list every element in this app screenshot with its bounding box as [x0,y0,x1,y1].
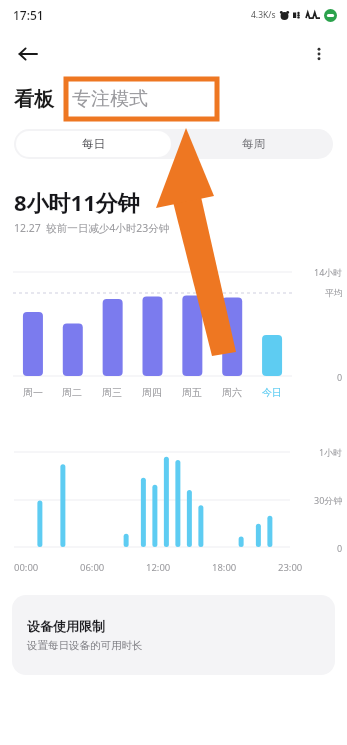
staticText: 周三 [102,386,122,399]
button[interactable]: 设备使用限制 [12,595,335,675]
staticText: 30分钟 [314,494,343,506]
staticText: 1小时 [319,446,343,458]
staticText: 8小时11分钟 [14,187,140,217]
staticText: 0 [337,542,343,554]
button[interactable]: 每日 [16,131,171,157]
staticText: 今日 [262,386,282,399]
staticText: 00:00 [14,561,39,574]
staticText: 每周 [242,137,265,151]
staticText: 周六 [222,386,242,399]
button[interactable]: 每周 [173,129,333,159]
staticText: 4.3K/s [251,9,276,21]
staticText: 17:51 [13,7,44,23]
staticText: 平均 [325,287,343,298]
staticText: 专注模式 [72,87,148,111]
staticText: 周五 [182,386,202,399]
staticText: 每日 [82,137,105,151]
staticText: 23:00 [278,561,303,574]
staticText: 06:00 [80,561,105,574]
staticText: 0 [337,371,343,383]
staticText: 18:00 [212,561,237,574]
staticText: 设备使用限制 [27,618,105,634]
button[interactable]: 专注模式 [72,87,148,111]
staticText: 14小时 [314,266,343,278]
staticText: 12:00 [146,561,171,574]
button[interactable]: Back [8,34,48,74]
staticText: 设置每日设备的可用时长 [27,639,143,652]
staticText: 看板 [14,87,54,112]
staticText: 周一 [23,386,43,399]
staticText: 周四 [142,386,162,399]
staticText: 周二 [62,386,82,399]
button[interactable]: More options [299,34,339,74]
staticText: 12.27 较前一日减少4小时23分钟 [14,221,170,235]
